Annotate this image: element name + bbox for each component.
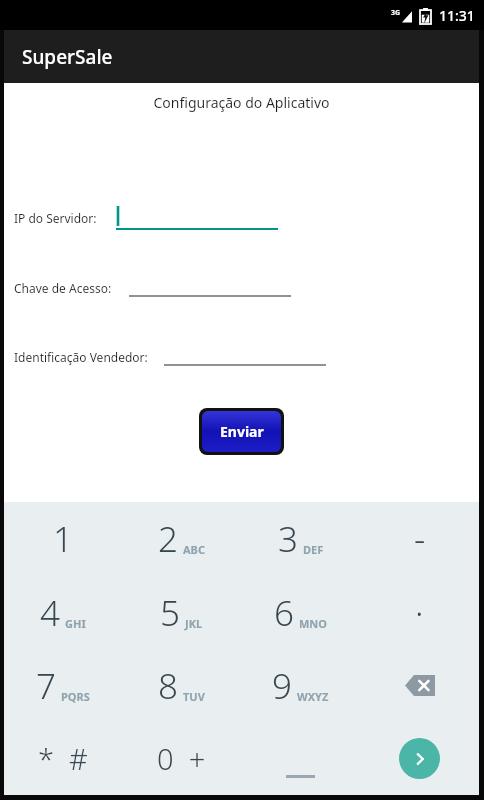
staticText: Identificação Vendedor: [14, 349, 164, 365]
button[interactable]: 6 [241, 576, 360, 649]
staticText: WXYZ [297, 689, 329, 704]
staticText: 9 [272, 662, 292, 710]
staticText: 8 [158, 662, 178, 710]
staticText: MNO [299, 616, 328, 631]
staticText: 5 [160, 589, 180, 637]
button[interactable]: 4 [4, 576, 122, 649]
staticText: Enviar [220, 422, 264, 441]
button[interactable]: 7 [4, 649, 122, 722]
staticText: IP do Servidor: [14, 210, 116, 226]
staticText: Configuração do Aplicativo [4, 93, 479, 112]
button[interactable]: 0 + [122, 722, 241, 795]
staticText: 1 [53, 515, 73, 563]
staticText: 3 [278, 515, 298, 563]
button[interactable]: SuperSale [4, 30, 479, 83]
button[interactable]: Backspace [360, 649, 479, 722]
staticText: 11:31 [439, 6, 475, 25]
staticText: 3G [391, 8, 401, 18]
staticText: PQRS [61, 689, 90, 704]
staticText: · [415, 589, 424, 637]
button[interactable]: - [360, 502, 479, 576]
button[interactable]: 1 [4, 502, 122, 576]
staticText: TUV [183, 689, 205, 704]
button[interactable]: Identificação Vendedor: [14, 344, 479, 370]
button[interactable]: 2 [122, 502, 241, 576]
button[interactable]: IP do Servidor: [14, 205, 479, 231]
button[interactable]: 9 [241, 649, 360, 722]
staticText: 6 [274, 589, 294, 637]
staticText: 4 [40, 589, 60, 637]
button[interactable]: * # [4, 722, 122, 795]
button[interactable]: Space [241, 722, 360, 795]
staticText: DEF [303, 542, 324, 557]
button[interactable]: Chave de Acesso: [14, 275, 479, 301]
staticText: 0 + [157, 739, 206, 778]
staticText: * # [38, 739, 88, 778]
staticText: - [414, 515, 426, 563]
staticText: JKL [185, 616, 203, 631]
staticText: 2 [158, 515, 178, 563]
button[interactable]: 3 [241, 502, 360, 576]
staticText: 7 [36, 662, 56, 710]
staticText: Chave de Acesso: [14, 280, 129, 296]
staticText: GHI [65, 616, 86, 631]
button[interactable]: 5 [122, 576, 241, 649]
button[interactable]: Enviar [202, 411, 281, 452]
button[interactable]: · [360, 576, 479, 649]
button[interactable]: 8 [122, 649, 241, 722]
staticText: SuperSale [22, 44, 113, 70]
staticText: ABC [183, 542, 205, 557]
button[interactable]: Enter [360, 722, 479, 795]
